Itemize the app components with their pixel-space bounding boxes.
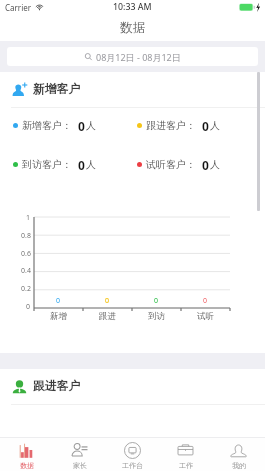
staticText: 0 <box>202 118 209 132</box>
staticText: 新增客户 <box>33 82 81 97</box>
staticText: 新增 <box>50 311 67 322</box>
staticText: 08月12日 - 08月12日 <box>96 51 181 63</box>
button[interactable]: 跟进客户 <box>12 369 265 404</box>
button[interactable]: 跟进客户： <box>137 118 265 132</box>
button[interactable]: 试听客户： <box>137 157 265 171</box>
staticText: 0.2 <box>21 284 31 294</box>
staticText: 0 <box>78 118 85 132</box>
staticText: 跟进客户 <box>33 379 81 394</box>
staticText: 0.8 <box>21 231 31 241</box>
staticText: 跟进 <box>99 311 116 322</box>
staticText: 新增客户： <box>22 119 72 132</box>
staticText: 1 <box>26 213 31 223</box>
staticText: 0 <box>154 296 159 306</box>
staticText: 家长 <box>73 461 87 470</box>
staticText: 试听 <box>197 311 214 322</box>
button[interactable]: 数据 <box>0 438 53 471</box>
staticText: 10:33 AM <box>113 1 152 13</box>
staticText: 0 <box>26 302 31 312</box>
staticText: 0.6 <box>21 249 31 259</box>
button[interactable]: 新增客户： <box>13 118 132 132</box>
button[interactable]: 工作 <box>159 438 212 471</box>
staticText: 工作台 <box>122 461 143 470</box>
staticText: 0 <box>78 157 85 171</box>
button[interactable]: Select date range <box>7 47 258 66</box>
staticText: 人 <box>86 158 96 171</box>
staticText: 0 <box>56 296 61 306</box>
staticText: 我的 <box>232 461 246 470</box>
staticText: 人 <box>210 119 220 132</box>
staticText: 0 <box>105 296 110 306</box>
staticText: 0 <box>203 296 208 306</box>
staticText: 到访 <box>148 311 165 322</box>
staticText: Carrier <box>5 2 32 13</box>
staticText: 试听客户： <box>146 158 196 171</box>
staticText: 0 <box>202 157 209 171</box>
staticText: 数据 <box>120 20 146 36</box>
button[interactable]: 工作台 <box>106 438 159 471</box>
button[interactable]: 家长 <box>53 438 106 471</box>
staticText: 到访客户： <box>22 158 72 171</box>
button[interactable]: 我的 <box>212 438 265 471</box>
staticText: 0.4 <box>21 266 31 276</box>
staticText: 人 <box>86 119 96 132</box>
staticText: 工作 <box>179 461 193 470</box>
staticText: 人 <box>210 158 220 171</box>
staticText: 数据 <box>20 461 34 470</box>
staticText: 跟进客户： <box>146 119 196 132</box>
button[interactable]: 到访客户： <box>13 157 132 171</box>
button[interactable]: 新增客户 <box>12 72 265 107</box>
